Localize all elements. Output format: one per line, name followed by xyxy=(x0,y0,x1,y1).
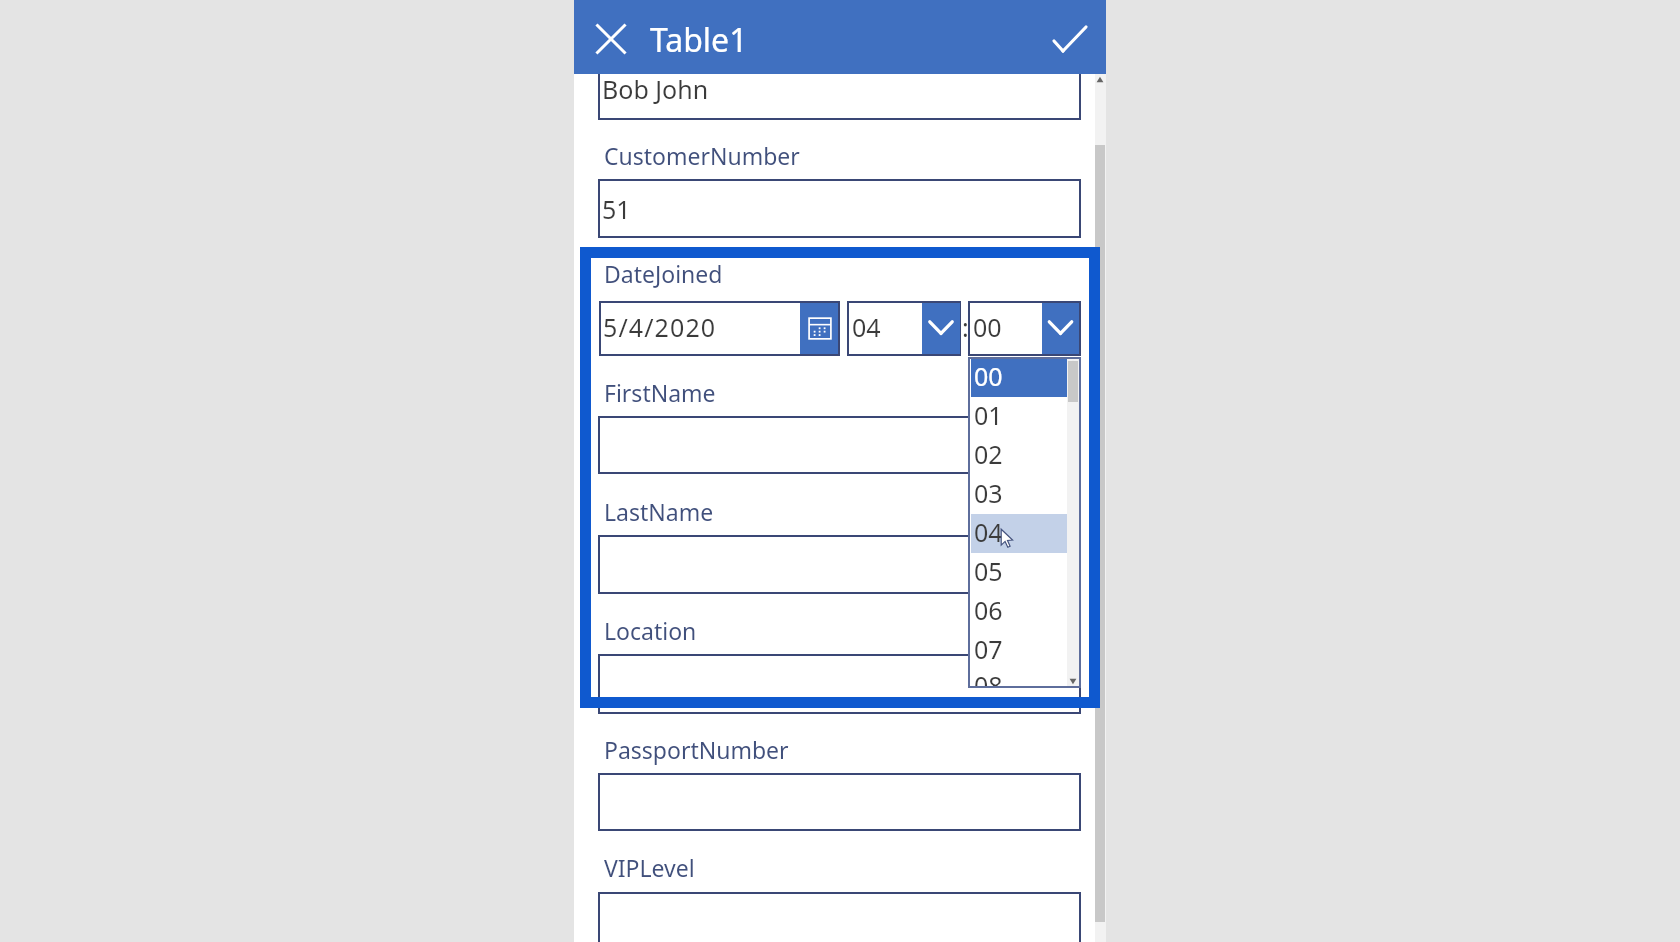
button[interactable] xyxy=(598,535,1081,594)
staticText: Location xyxy=(604,615,697,646)
staticText: LastName xyxy=(604,496,714,527)
staticText: 04 xyxy=(852,310,881,344)
button[interactable]: 04 xyxy=(847,301,961,356)
button[interactable]: 08 xyxy=(971,670,1067,689)
button[interactable]: Close xyxy=(586,14,636,64)
staticText: 07 xyxy=(974,632,1003,666)
button[interactable] xyxy=(598,654,1081,714)
staticText: Bob John xyxy=(602,72,709,106)
button[interactable]: 5/4/2020 xyxy=(599,301,840,356)
staticText: DateJoined xyxy=(604,258,723,289)
button[interactable]: 02 xyxy=(971,436,1067,475)
button[interactable] xyxy=(598,773,1081,831)
staticText: 06 xyxy=(974,593,1003,627)
button[interactable]: 00 xyxy=(971,358,1067,397)
staticText: Table1 xyxy=(650,18,748,62)
button[interactable] xyxy=(598,416,1081,474)
staticText: 04 xyxy=(974,515,1003,549)
button[interactable] xyxy=(598,892,1081,942)
staticText: CustomerNumber xyxy=(604,140,800,171)
staticText: 03 xyxy=(974,476,1003,510)
button[interactable]: 00 xyxy=(968,301,1081,356)
button[interactable]: 06 xyxy=(971,592,1067,631)
staticText: 08 xyxy=(974,668,1003,687)
button[interactable]: 04 xyxy=(971,514,1067,553)
staticText: 05 xyxy=(974,554,1003,588)
button[interactable]: Bob John xyxy=(598,62,1081,120)
button[interactable]: 07 xyxy=(971,631,1067,670)
button[interactable]: 01 xyxy=(971,397,1067,436)
staticText: 01 xyxy=(974,398,1003,432)
staticText: 00 xyxy=(974,359,1003,393)
staticText: 02 xyxy=(974,437,1003,471)
button[interactable]: Save xyxy=(1044,12,1094,62)
staticText: 5/4/2020 xyxy=(603,310,717,344)
button[interactable]: Pick date xyxy=(800,303,838,354)
button[interactable]: Select minute xyxy=(1042,303,1079,354)
staticText: 00 xyxy=(973,310,1002,344)
button[interactable]: Select hour xyxy=(922,303,960,354)
staticText: : xyxy=(962,310,969,344)
staticText: 51 xyxy=(602,192,631,226)
staticText: PassportNumber xyxy=(604,734,789,765)
button[interactable]: 51 xyxy=(598,179,1081,238)
staticText: VIPLevel xyxy=(604,852,695,883)
button[interactable]: 03 xyxy=(971,475,1067,514)
button[interactable]: 05 xyxy=(971,553,1067,592)
staticText: FirstName xyxy=(604,377,716,408)
